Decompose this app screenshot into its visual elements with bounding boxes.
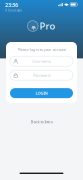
staticText: 4 hours ago [5,9,22,12]
staticText: Back to Intro [30,119,52,124]
staticText: Username [32,58,51,64]
staticText: Pro [39,20,55,32]
staticText: LOGIN [35,90,47,96]
staticText: Password [33,72,50,78]
button[interactable]: Back to Intro [28,117,54,126]
staticText: Please log in to your account [17,47,65,52]
staticText: 23:36 [5,1,18,9]
button[interactable]: LOGIN [10,88,73,98]
